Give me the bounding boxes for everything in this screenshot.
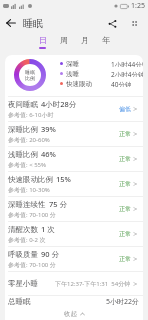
staticText: 总睡眠 <box>8 297 31 306</box>
staticText: 正常 <box>119 255 131 263</box>
staticText: 睡眠 <box>23 17 43 30</box>
staticText: 正常 <box>119 130 131 138</box>
staticText: 深睡 <box>66 60 79 67</box>
staticText: 参考值: 70-100 分 <box>8 261 56 269</box>
staticText: 1 次 <box>41 224 55 234</box>
staticText: 正常 <box>119 180 131 188</box>
staticText: 2小时4分钟 <box>111 70 143 77</box>
button[interactable]: 月 <box>74 34 95 50</box>
staticText: 快速眼动比例 <box>8 175 53 184</box>
staticText: 46% <box>41 149 56 159</box>
button[interactable]: Back <box>0 12 22 34</box>
staticText: 75 分 <box>49 199 68 209</box>
button[interactable]: 年 <box>95 34 116 50</box>
staticText: 快速眼动 <box>66 80 92 87</box>
staticText: 正常 <box>119 205 131 213</box>
staticText: 偏低 <box>119 105 131 113</box>
staticText: 比例 <box>25 75 35 81</box>
button[interactable]: 夜间睡眠 <box>5 96 143 121</box>
button[interactable]: 收起 <box>5 307 143 320</box>
staticText: 零星小睡 <box>8 279 38 288</box>
button[interactable]: 呼吸质量 <box>5 246 143 271</box>
button[interactable]: 零星小睡 <box>5 271 143 295</box>
staticText: 睡眠 <box>25 69 35 75</box>
staticText: 参考值: < 55% <box>8 161 47 169</box>
staticText: 5小时22分 <box>106 297 140 307</box>
staticText: 参考值: 6-10小时 <box>8 111 54 119</box>
staticText: 日 <box>39 35 47 45</box>
staticText: 40分钟 <box>111 80 132 87</box>
staticText: 月 <box>81 35 89 45</box>
staticText: 1小时44分钟 <box>111 60 143 67</box>
staticText: 15% <box>56 174 71 184</box>
staticText: 正常 <box>119 155 131 163</box>
button[interactable]: 周 <box>53 34 74 50</box>
staticText: 正常 <box>119 230 131 238</box>
staticText: 浅睡比例 <box>8 150 38 159</box>
staticText: 清醒次数 <box>8 225 38 234</box>
button[interactable]: 深睡比例 <box>5 121 143 146</box>
staticText: 参考值: 70-100 分 <box>8 211 56 219</box>
staticText: 收起 <box>64 310 77 318</box>
staticText: 参考值: 20-60% <box>8 136 50 144</box>
button[interactable]: More options <box>123 12 145 34</box>
staticText: 深睡比例 <box>8 125 38 134</box>
staticText: 1:25 <box>131 1 145 11</box>
staticText: 深睡连续性 <box>8 200 46 209</box>
staticText: 下午12:37-下午1:31 54分钟 <box>55 280 131 288</box>
button[interactable]: 清醒次数 <box>5 221 143 246</box>
staticText: 年 <box>102 35 110 45</box>
staticText: 参考值: 0-2 次 <box>8 236 46 244</box>
staticText: 39% <box>41 124 56 134</box>
staticText: 4小时28分 <box>41 99 77 109</box>
staticText: 呼吸质量 <box>8 250 38 259</box>
button[interactable]: 深睡连续性 <box>5 196 143 221</box>
button[interactable]: Share <box>101 12 123 34</box>
staticText: 夜间睡眠 <box>8 100 38 109</box>
staticText: 参考值: 10-30% <box>8 186 50 194</box>
staticText: 90 分 <box>41 249 60 259</box>
button[interactable]: 浅睡比例 <box>5 146 143 171</box>
staticText: 浅睡 <box>66 70 79 77</box>
button[interactable]: 快速眼动比例 <box>5 171 143 196</box>
button[interactable]: 日 <box>32 34 53 50</box>
staticText: 周 <box>60 35 68 45</box>
